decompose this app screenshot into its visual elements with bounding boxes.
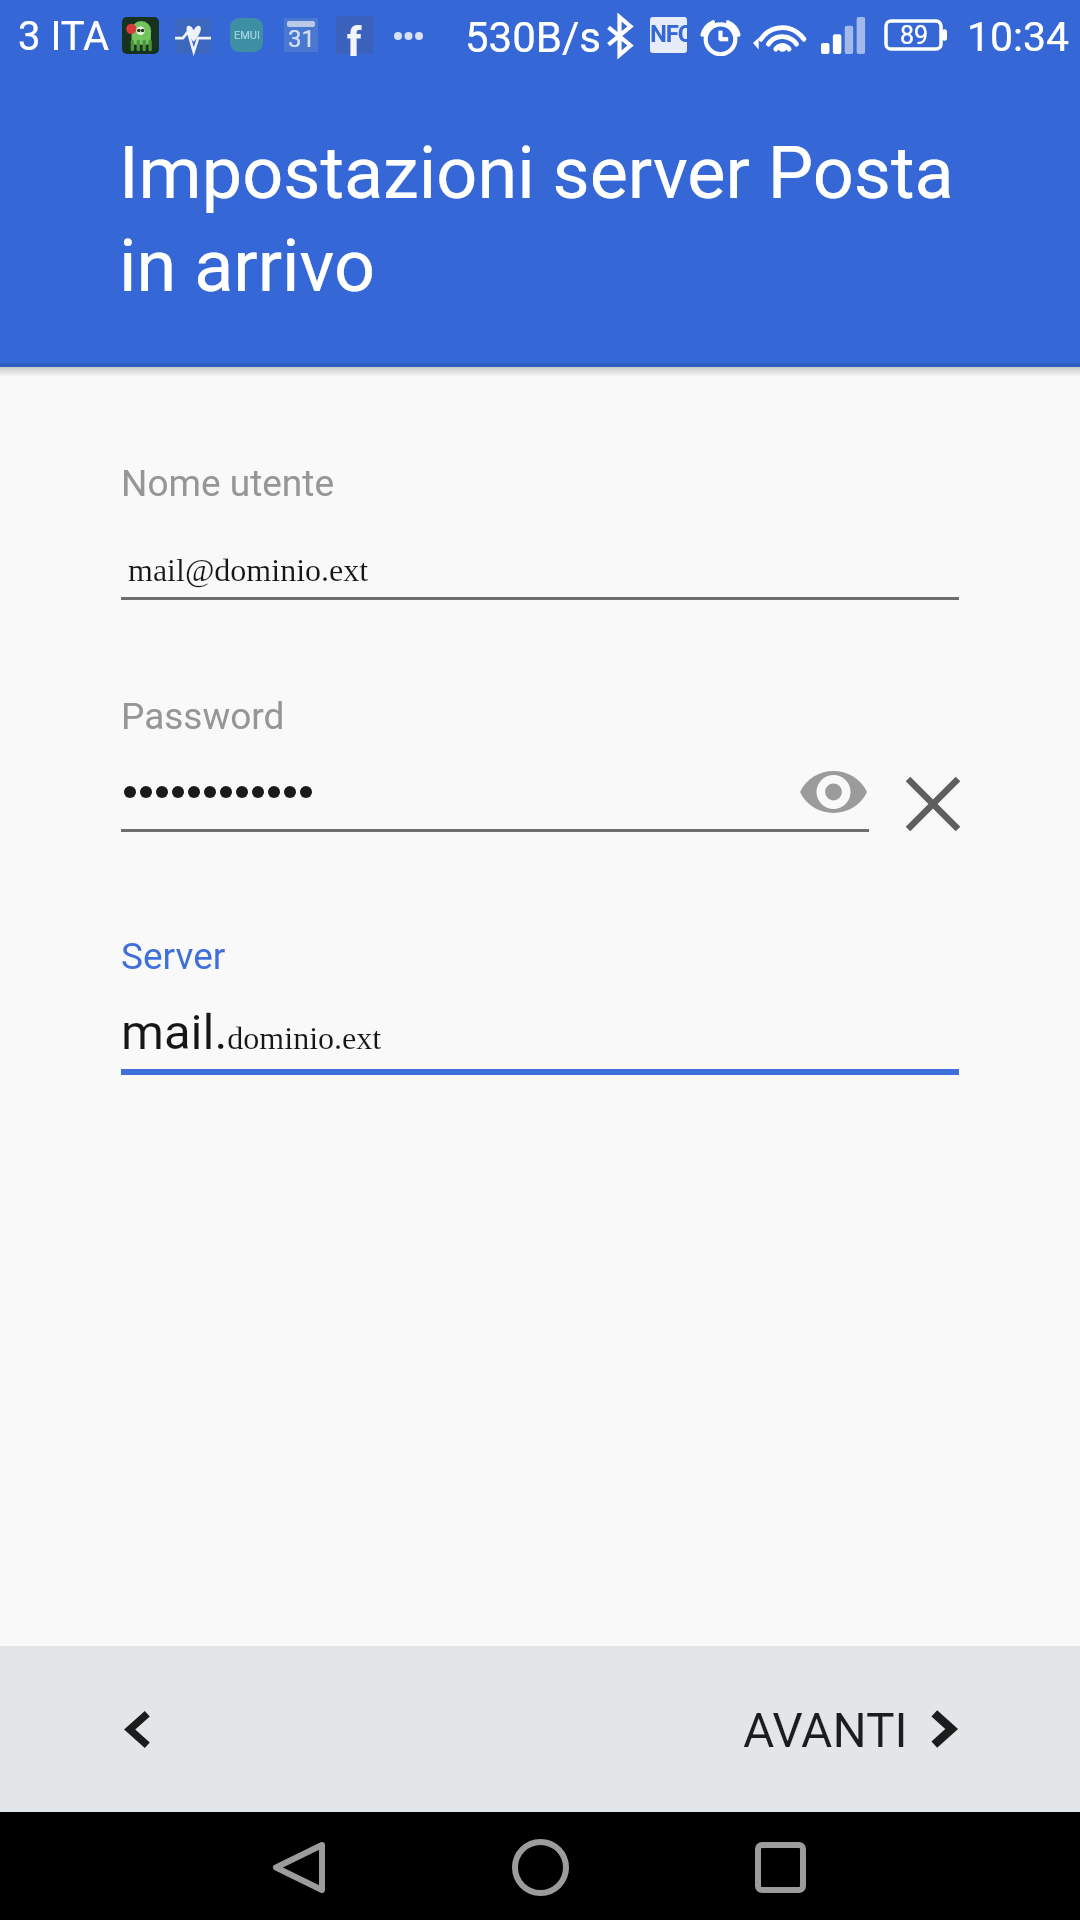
staticText: mail@dominio.ext [128, 552, 369, 587]
staticText: 10:34 [967, 13, 1070, 61]
button[interactable]: Server [121, 925, 959, 1075]
staticText: EMUI [234, 29, 260, 42]
button[interactable]: Home [490, 1817, 590, 1917]
button[interactable]: AVANTI [713, 1662, 993, 1796]
button[interactable]: Recents [730, 1817, 830, 1917]
staticText: Nome utente [121, 462, 335, 505]
staticText: AVANTI [743, 1702, 908, 1758]
staticText: mail.dominio.ext [121, 1004, 382, 1061]
staticText: 31 [288, 25, 315, 53]
staticText: f [347, 19, 362, 57]
button[interactable]: Cancella [883, 754, 983, 854]
button[interactable]: Back [249, 1817, 349, 1917]
button[interactable]: Mostra password [783, 742, 883, 842]
button[interactable]: Nome utente [121, 452, 959, 602]
staticText: Server [121, 935, 226, 978]
button[interactable]: Password [121, 684, 869, 832]
staticText: Password [121, 695, 285, 738]
staticText: 3 ITA [18, 13, 110, 60]
staticText: 89 [900, 21, 929, 50]
staticText: 530B/s [465, 13, 601, 62]
staticText: NFC [650, 20, 687, 48]
staticText: Impostazioni server Posta in arrivo [119, 131, 954, 308]
button[interactable]: Indietro [88, 1679, 188, 1779]
